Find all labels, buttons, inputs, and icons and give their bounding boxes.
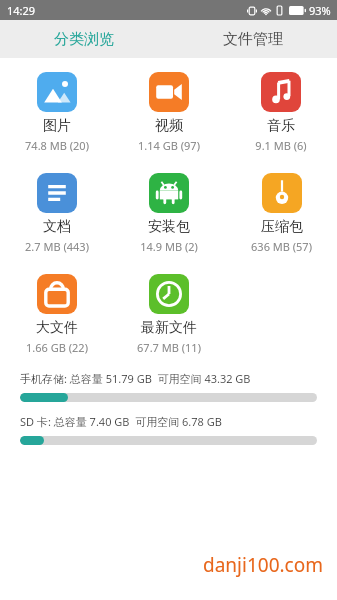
staticText: 压缩包 [261, 218, 303, 236]
staticText: 音乐 [267, 117, 295, 135]
button[interactable]: 图片 [21, 70, 93, 155]
button[interactable]: 文档 [21, 171, 93, 256]
button[interactable]: 音乐 [251, 70, 311, 155]
button[interactable]: 大文件 [22, 272, 92, 357]
staticText: 分类浏览 [54, 30, 114, 49]
staticText: 视频 [155, 117, 183, 135]
staticText: SD 卡: 总容量 7.40 GB 可用空间 6.78 GB [20, 414, 222, 429]
staticText: 文档 [43, 218, 71, 236]
staticText: 14:29 [7, 3, 36, 18]
staticText: 67.7 MB (11) [137, 340, 201, 355]
staticText: danji100.com [203, 552, 323, 578]
button[interactable]: 安装包 [136, 171, 202, 256]
staticText: 1.66 GB (22) [26, 340, 88, 355]
staticText: 1.14 GB (97) [138, 138, 200, 153]
staticText: 文件管理 [223, 30, 283, 49]
staticText: 9.1 MB (6) [255, 138, 307, 153]
staticText: 大文件 [36, 319, 78, 337]
button[interactable]: 压缩包 [247, 171, 316, 256]
button[interactable]: 文件管理 [168, 20, 337, 58]
button[interactable]: 最新文件 [133, 272, 205, 357]
button[interactable]: 分类浏览 [0, 20, 168, 58]
staticText: 93% [309, 3, 331, 18]
staticText: 安装包 [148, 218, 190, 236]
staticText: 636 MB (57) [251, 239, 312, 254]
staticText: 2.7 MB (443) [25, 239, 89, 254]
staticText: 74.8 MB (20) [25, 138, 89, 153]
staticText: 最新文件 [141, 319, 197, 337]
staticText: 图片 [43, 117, 71, 135]
button[interactable]: 视频 [134, 70, 204, 155]
staticText: 14.9 MB (2) [140, 239, 198, 254]
staticText: 手机存储: 总容量 51.79 GB 可用空间 43.32 GB [20, 371, 251, 386]
